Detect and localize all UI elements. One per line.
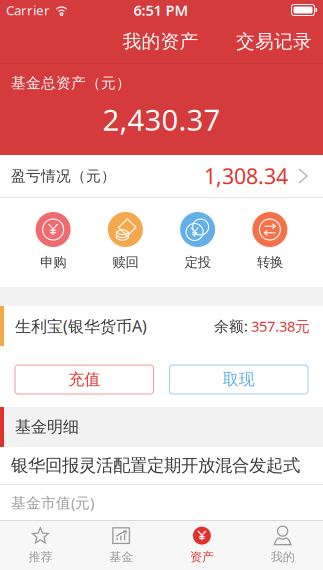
- staticText: 取现: [223, 370, 255, 389]
- staticText: 6:51 PM: [133, 0, 188, 20]
- staticText: Carrier: [6, 1, 50, 19]
- button[interactable]: 充值: [15, 365, 153, 394]
- button[interactable]: 取现: [169, 365, 308, 394]
- button[interactable]: 推荐: [0, 521, 81, 570]
- staticText: 基金: [109, 550, 133, 564]
- staticText: 交易记录: [236, 30, 312, 53]
- staticText: 我的: [271, 550, 295, 564]
- button[interactable]: 盈亏情况（元）: [0, 155, 323, 197]
- staticText: 申购: [40, 254, 66, 270]
- button[interactable]: 我的: [242, 521, 323, 570]
- button[interactable]: 交易记录: [226, 21, 322, 62]
- button[interactable]: 赎回: [89, 212, 161, 270]
- button[interactable]: 我的资产: [112, 21, 208, 62]
- staticText: 基金市值(元): [11, 493, 94, 512]
- staticText: 赎回: [112, 254, 138, 270]
- staticText: 盈亏情况（元）: [11, 167, 116, 185]
- staticText: 生利宝(银华货币A): [15, 315, 147, 337]
- staticText: 357.38元: [251, 316, 310, 336]
- staticText: 基金总资产（元）: [11, 74, 131, 92]
- staticText: 定投: [185, 254, 211, 270]
- staticText: 银华回报灵活配置定期开放混合发起式: [11, 455, 300, 476]
- staticText: 资产: [190, 550, 214, 564]
- staticText: 2,430.37: [102, 100, 220, 139]
- staticText: 我的资产: [122, 30, 198, 53]
- staticText: 余额:: [214, 316, 248, 336]
- button[interactable]: 申购: [17, 212, 89, 270]
- staticText: 推荐: [28, 550, 52, 564]
- staticText: 转换: [257, 254, 283, 270]
- button[interactable]: 银华回报灵活配置定期开放混合发起式: [0, 447, 323, 484]
- staticText: 基金明细: [15, 417, 79, 437]
- staticText: 充值: [68, 370, 100, 389]
- button[interactable]: 基金: [81, 521, 162, 570]
- button[interactable]: 资产: [161, 521, 242, 570]
- staticText: 1,308.34: [204, 162, 288, 190]
- button[interactable]: 定投: [161, 212, 234, 270]
- button[interactable]: 转换: [234, 212, 306, 270]
